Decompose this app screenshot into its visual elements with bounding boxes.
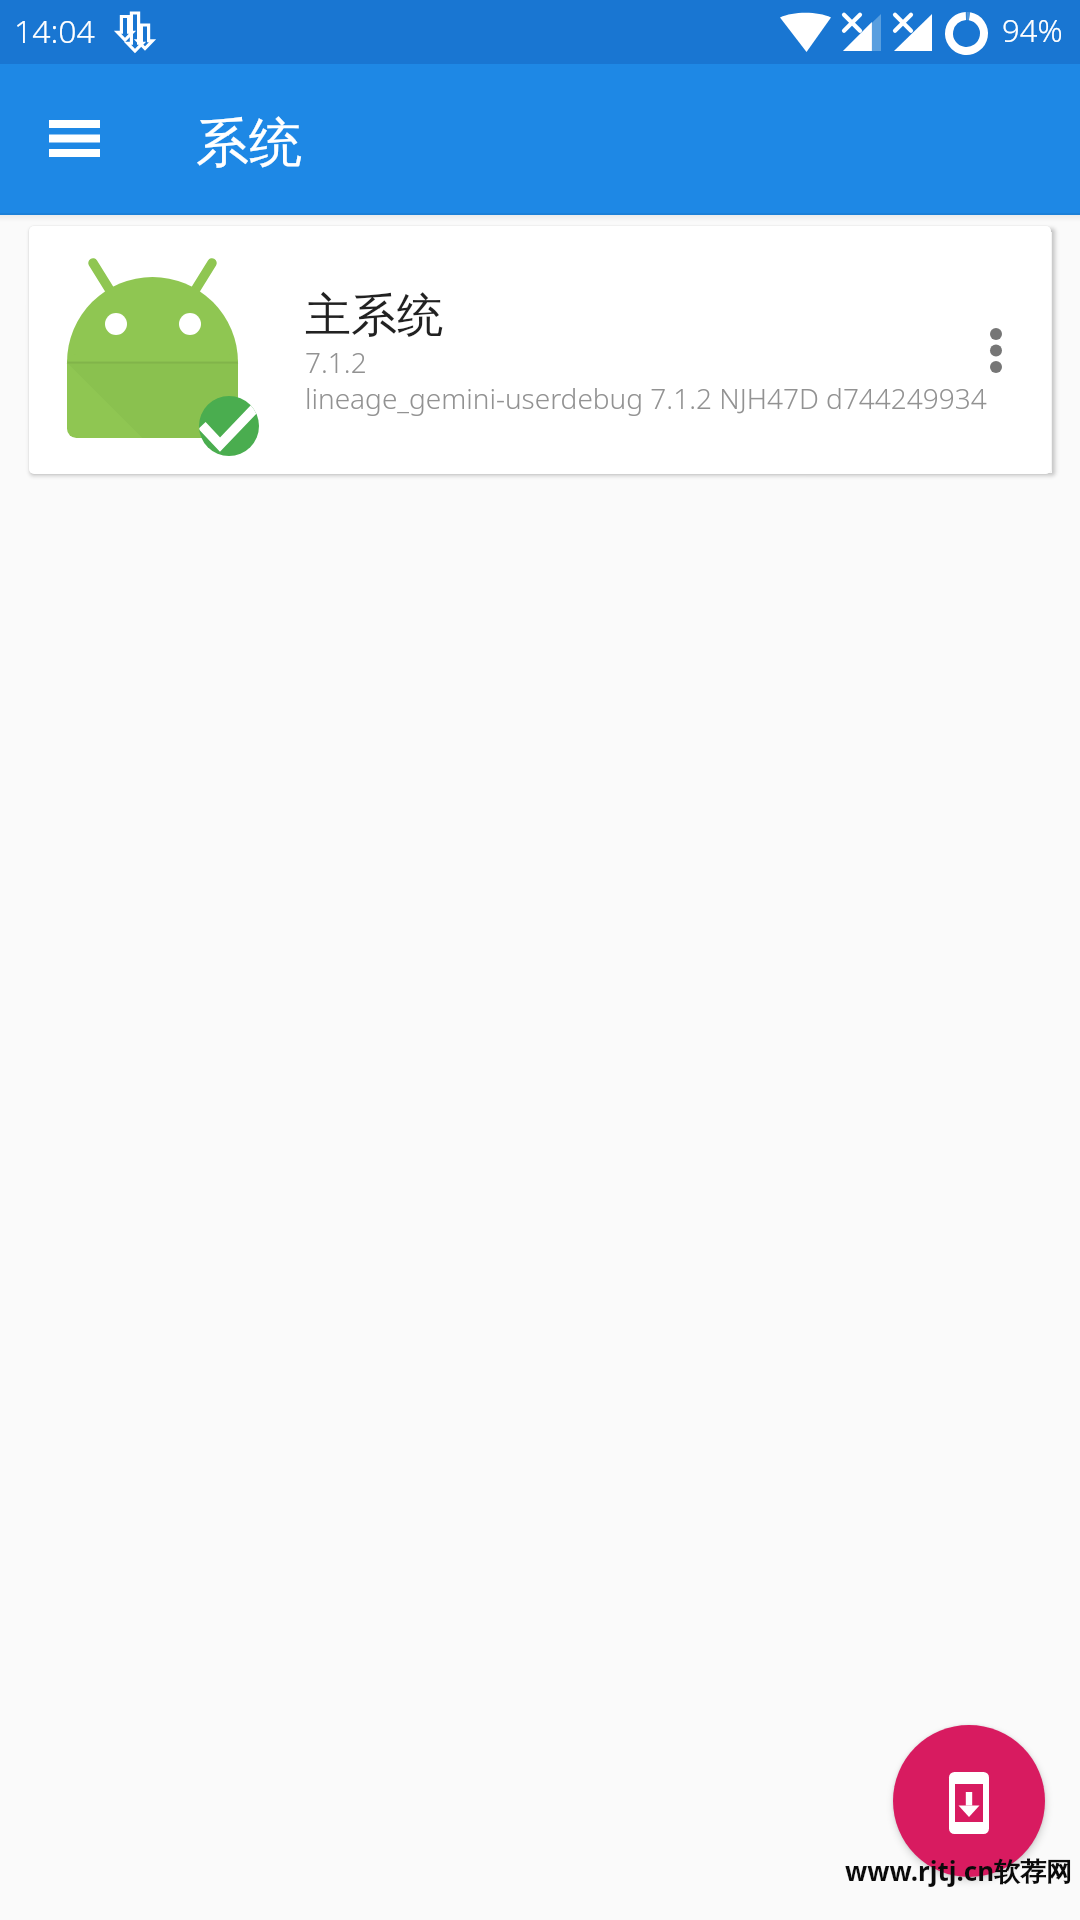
button[interactable]: Open navigation drawer [26,90,122,186]
staticText: 94% [1002,9,1063,51]
button[interactable]: 主系统 [29,226,1051,474]
staticText: www.rjtj.cn软荐网 [845,1853,1073,1889]
staticText: 主系统 [305,287,443,345]
staticText: 7.1.2 [305,343,367,381]
staticText: 系统 [196,110,302,177]
button[interactable]: Download system update [893,1725,1045,1877]
staticText: lineage_gemini-userdebug 7.1.2 NJH47D d7… [305,379,987,417]
staticText: 14:04 [14,9,95,53]
button[interactable]: More options [956,295,1036,405]
